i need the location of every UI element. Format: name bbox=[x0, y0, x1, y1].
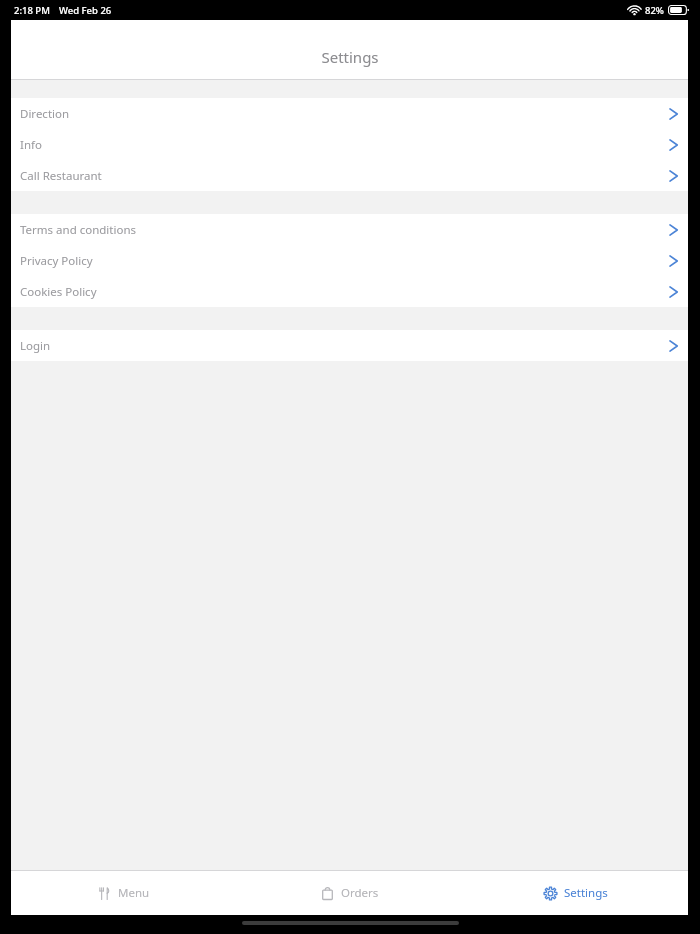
staticText: Call Restaurant bbox=[20, 168, 668, 184]
button[interactable]: Orders bbox=[236, 871, 462, 915]
button[interactable]: Terms and conditions bbox=[11, 214, 688, 245]
staticText: Menu bbox=[118, 885, 150, 901]
staticText: 2:18 PM bbox=[14, 4, 50, 17]
button[interactable]: Menu bbox=[11, 871, 236, 915]
button[interactable]: Call Restaurant bbox=[11, 160, 688, 191]
button[interactable]: Direction bbox=[11, 98, 688, 129]
staticText: Info bbox=[20, 137, 668, 153]
staticText: Cookies Policy bbox=[20, 284, 668, 300]
staticText: Privacy Policy bbox=[20, 253, 668, 269]
staticText: Login bbox=[20, 338, 668, 354]
button[interactable]: Privacy Policy bbox=[11, 245, 688, 276]
button[interactable]: Info bbox=[11, 129, 688, 160]
staticText: Wed Feb 26 bbox=[59, 4, 112, 17]
staticText: Settings bbox=[321, 47, 379, 67]
staticText: Direction bbox=[20, 106, 668, 122]
button[interactable]: Settings bbox=[462, 871, 688, 915]
staticText: Orders bbox=[341, 885, 379, 901]
staticText: Terms and conditions bbox=[20, 222, 668, 238]
staticText: Settings bbox=[564, 885, 608, 901]
button[interactable]: Login bbox=[11, 330, 688, 361]
button[interactable]: Cookies Policy bbox=[11, 276, 688, 307]
staticText: 82% bbox=[645, 4, 664, 17]
